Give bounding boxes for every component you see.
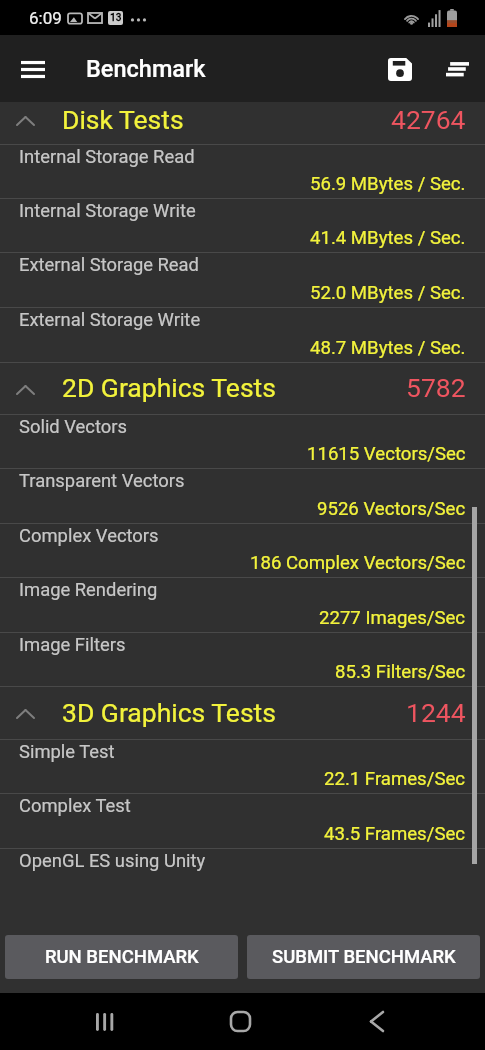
staticText: OpenGL ES using Unity [19,850,206,872]
button[interactable]: Recents [76,993,133,1050]
staticText: 43.5 Frames/Sec [324,823,466,845]
button[interactable]: Simple Test [0,739,485,793]
staticText: 1244 [406,697,466,728]
button[interactable]: RUN BENCHMARK [5,935,238,979]
staticText: 3D Graphics Tests [62,697,276,728]
button[interactable]: External Storage Read [0,252,485,307]
staticText: Image Rendering [19,579,158,601]
staticText: SUBMIT BENCHMARK [272,946,456,968]
staticText: 2277 Images/Sec [319,607,466,629]
button[interactable]: Menu [10,46,56,92]
button[interactable]: Save [377,46,423,92]
staticText: 11615 Vectors/Sec [307,443,466,465]
button[interactable]: SUBMIT BENCHMARK [247,935,480,979]
staticText: 186 Complex Vectors/Sec [250,552,466,574]
staticText: Disk Tests [62,104,184,135]
button[interactable]: Transparent Vectors [0,468,485,523]
staticText: Internal Storage Write [19,200,196,222]
staticText: Simple Test [19,741,115,763]
staticText: 2D Graphics Tests [62,372,276,403]
staticText: Complex Vectors [19,525,159,547]
staticText: Image Filters [19,634,126,656]
staticText: Solid Vectors [19,416,128,438]
staticText: 85.3 Filters/Sec [335,661,466,683]
staticText: External Storage Write [19,309,201,331]
button[interactable]: External Storage Write [0,307,485,362]
staticText: 48.7 MBytes / Sec. [310,337,466,359]
button[interactable]: Internal Storage Read [0,144,485,198]
staticText: 52.0 MBytes / Sec. [310,282,466,304]
button[interactable]: OpenGL ES using Unity [0,848,485,902]
staticText: 5782 [406,372,466,403]
staticText: 9526 Vectors/Sec [317,498,466,520]
staticText: 13 [110,12,122,24]
button[interactable]: Image Rendering [0,577,485,632]
staticText: RUN BENCHMARK [45,946,199,968]
staticText: Complex Test [19,795,131,817]
button[interactable]: Internal Storage Write [0,198,485,252]
button[interactable]: Complex Test [0,793,485,848]
staticText: Internal Storage Read [19,146,195,168]
staticText: Transparent Vectors [19,470,185,492]
button[interactable]: Solid Vectors [0,414,485,468]
staticText: 22.1 Frames/Sec [324,768,466,790]
button[interactable]: 3D Graphics Tests [0,686,485,739]
button[interactable]: Home [212,993,269,1050]
button[interactable]: Image Filters [0,632,485,686]
staticText: Benchmark [86,55,206,83]
button[interactable]: 2D Graphics Tests [0,362,485,414]
button[interactable]: Disk Tests [0,102,485,144]
staticText: External Storage Read [19,254,199,276]
button[interactable]: Sort [434,46,480,92]
staticText: 56.9 MBytes / Sec. [310,173,466,195]
staticText: 42764 [391,104,466,135]
staticText: 6:09 [29,8,62,28]
button[interactable]: Back [348,993,405,1050]
staticText: 41.4 MBytes / Sec. [310,227,466,249]
button[interactable]: Complex Vectors [0,523,485,577]
